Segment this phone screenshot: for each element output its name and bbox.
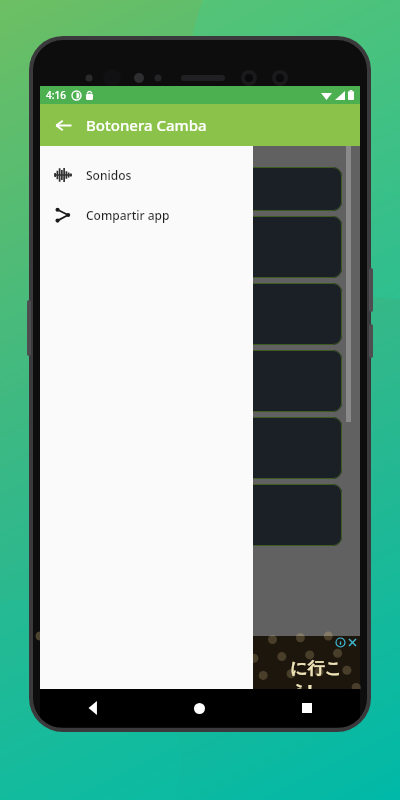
button[interactable]: Recents [253, 689, 360, 727]
staticText: に行こう! [290, 658, 360, 689]
button[interactable]: SE PUEDE SE PUEDE [48, 484, 342, 546]
button[interactable]: Home [146, 689, 253, 727]
button[interactable]: LA PUTA EMRDA [48, 216, 342, 278]
button[interactable]: Sonidos [40, 160, 253, 190]
button[interactable]: Back [40, 104, 86, 146]
button[interactable]: LA PUTA EMRDA [48, 167, 342, 211]
staticText: Botonera Camba [86, 115, 207, 135]
button[interactable]: SUBESTIMES MI INTELIGENCIA [48, 350, 342, 412]
button[interactable]: Compartir app [40, 200, 253, 230]
button[interactable]: SOY BLUDO [48, 283, 342, 345]
button[interactable]: ACHISHU [48, 417, 342, 479]
button[interactable]: Back [40, 689, 146, 727]
staticText: Compartir app [86, 207, 170, 223]
staticText: 4:16 [46, 88, 66, 102]
button[interactable]: に行こう! [40, 636, 360, 689]
staticText: Sonidos [86, 167, 132, 183]
